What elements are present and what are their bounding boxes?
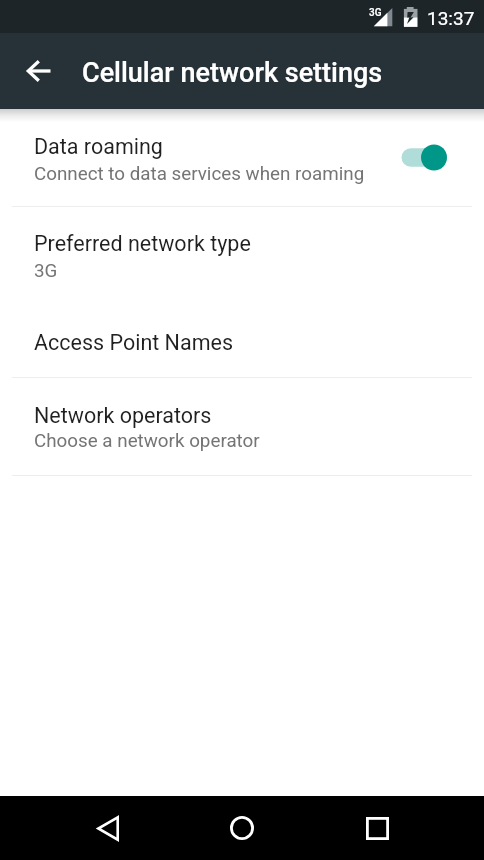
staticText: 3G bbox=[34, 260, 58, 282]
staticText: Preferred network type bbox=[34, 231, 251, 256]
button[interactable]: Data roaming switch, on bbox=[393, 109, 451, 206]
staticText: Cellular network settings bbox=[82, 57, 383, 89]
button[interactable]: Navigate up bbox=[11, 33, 67, 109]
staticText: 13:37 bbox=[427, 7, 475, 29]
button[interactable]: Access Point Names bbox=[0, 303, 484, 377]
staticText: Network operators bbox=[34, 403, 212, 428]
button[interactable]: Recent apps bbox=[341, 796, 413, 860]
button[interactable]: Data roaming bbox=[0, 109, 484, 206]
button[interactable]: Preferred network type bbox=[0, 207, 484, 303]
button[interactable]: Back bbox=[72, 796, 144, 860]
button[interactable]: Network operators bbox=[0, 378, 484, 475]
staticText: Choose a network operator bbox=[34, 430, 260, 452]
staticText: 3G bbox=[369, 7, 382, 19]
staticText: Access Point Names bbox=[34, 330, 234, 355]
staticText: Connect to data services when roaming bbox=[34, 163, 365, 185]
staticText: Data roaming bbox=[34, 134, 163, 159]
button[interactable]: Home bbox=[206, 796, 278, 860]
